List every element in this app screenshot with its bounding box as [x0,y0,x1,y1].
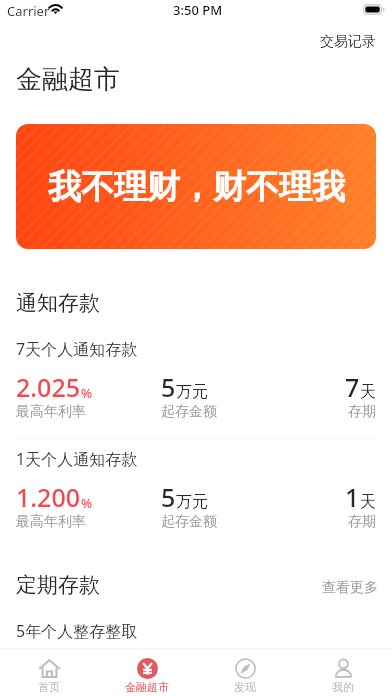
staticText: 查看更多 [322,579,378,597]
staticText: 交易记录 [320,33,376,51]
staticText: 最高年利率 [16,513,86,531]
staticText: 我不理财，财不理我 [48,166,345,208]
staticText: 存期 [348,403,376,421]
button[interactable]: 发现 [196,649,294,696]
staticText: 万元 [176,492,208,512]
button[interactable]: 金融超市 [98,649,196,696]
staticText: % [81,384,93,402]
staticText: 起存金额 [161,403,217,421]
staticText: 1.200 [16,480,81,514]
staticText: 最高年利率 [16,403,86,421]
staticText: 天 [360,492,376,512]
staticText: 1 [345,480,360,514]
staticText: 2.025 [16,370,81,404]
staticText: 7天个人通知存款 [16,338,138,360]
staticText: 起存金额 [161,513,217,531]
button[interactable]: 查看更多 [316,575,384,601]
button[interactable]: 我不理财，财不理我 [16,124,376,249]
button[interactable]: 交易记录 [314,29,382,55]
staticText: 7 [345,370,360,404]
staticText: 金融超市 [125,680,169,694]
button[interactable]: 首页 [0,649,98,696]
staticText: 5年个人整存整取 [16,620,138,642]
button[interactable]: 定期存款 [16,572,100,598]
button[interactable]: 1天个人通知存款 [0,448,392,532]
staticText: 5 [161,480,176,514]
button[interactable]: 5年个人整存整取 [16,620,138,642]
staticText: 天 [360,382,376,402]
staticText: Carrier [7,2,50,20]
staticText: 定期存款 [16,572,100,598]
staticText: 发现 [234,680,256,694]
button[interactable]: 7天个人通知存款 [0,338,392,422]
staticText: 3:50 PM [173,1,223,19]
button[interactable]: 我的 [294,649,392,696]
staticText: 1天个人通知存款 [16,448,138,470]
button[interactable]: 通知存款 [16,290,100,316]
staticText: 通知存款 [16,290,100,316]
staticText: 金融超市 [16,63,120,96]
staticText: 5 [161,370,176,404]
staticText: 万元 [176,382,208,402]
staticText: % [81,494,93,512]
staticText: 我的 [332,680,354,694]
staticText: 首页 [38,680,60,694]
staticText: 存期 [348,513,376,531]
